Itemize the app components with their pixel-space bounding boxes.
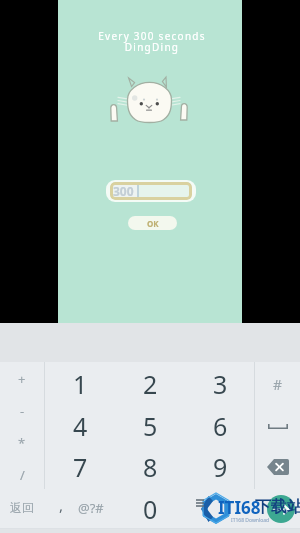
staticText: IT168 Download xyxy=(231,517,270,524)
button[interactable]: 5 xyxy=(115,405,185,447)
button[interactable]: 6 xyxy=(185,405,255,447)
button[interactable]: 0 xyxy=(115,488,185,530)
button[interactable]: 9 xyxy=(185,446,255,488)
button[interactable]: 4 xyxy=(45,405,115,447)
staticText: , xyxy=(59,495,64,515)
button[interactable]: / xyxy=(0,459,44,491)
button[interactable]: 8 xyxy=(115,446,185,488)
button[interactable]: 2 xyxy=(115,363,185,405)
button[interactable]: Backspace xyxy=(255,446,300,488)
button[interactable]: - xyxy=(0,395,44,427)
staticText: ITI68 xyxy=(218,496,261,519)
staticText: / xyxy=(20,466,25,484)
staticText: 7 xyxy=(73,450,88,484)
staticText: 300 xyxy=(113,183,134,199)
staticText: 0 xyxy=(143,492,158,526)
button[interactable]: Space xyxy=(255,405,300,447)
button[interactable]: Enter xyxy=(255,488,300,530)
button[interactable]: 返回 xyxy=(0,491,44,523)
button[interactable]: # xyxy=(255,363,300,405)
staticText: 6 xyxy=(213,409,228,443)
staticText: @?# xyxy=(78,499,104,517)
staticText: - xyxy=(20,402,25,420)
staticText: + xyxy=(18,370,26,388)
button[interactable]: + xyxy=(0,363,44,395)
staticText: # xyxy=(273,375,283,394)
staticText: 下载站 xyxy=(255,497,300,517)
button[interactable]: * xyxy=(0,427,44,459)
button[interactable]: OK xyxy=(128,216,177,230)
button[interactable]: @?# xyxy=(75,487,106,528)
button[interactable]: 300 xyxy=(106,180,196,202)
staticText: OK xyxy=(147,218,159,229)
staticText: 4 xyxy=(73,409,88,443)
staticText: 2 xyxy=(143,367,158,401)
button[interactable]: 7 xyxy=(45,446,115,488)
staticText: 8 xyxy=(143,450,158,484)
staticText: 9 xyxy=(213,450,228,484)
staticText: Every 300 seconds DingDing xyxy=(98,29,206,54)
staticText: 1 xyxy=(73,367,88,401)
staticText: 5 xyxy=(143,409,158,443)
button[interactable]: 3 xyxy=(185,363,255,405)
staticText: 3 xyxy=(213,367,228,401)
button[interactable]: , xyxy=(46,487,76,528)
staticText: * xyxy=(18,434,26,452)
button[interactable]: 1 xyxy=(45,363,115,405)
staticText: 返回 xyxy=(10,500,34,515)
